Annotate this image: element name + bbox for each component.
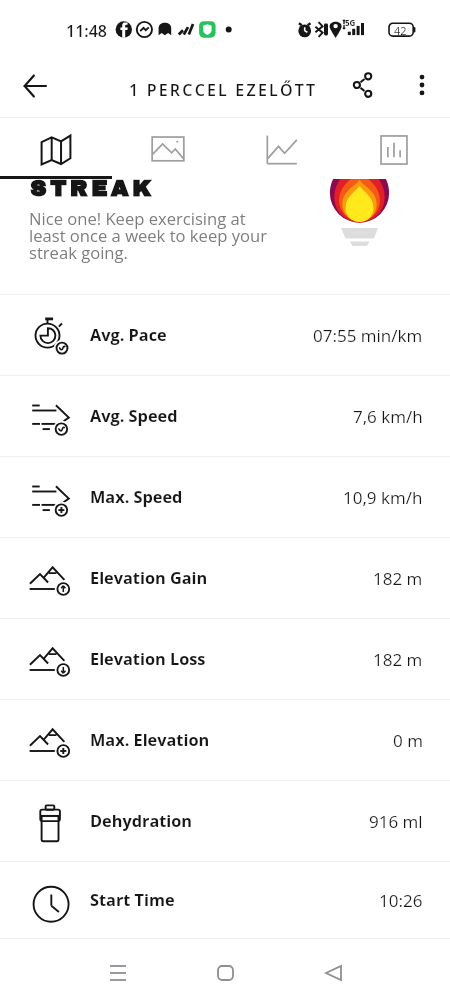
button[interactable]: Start Time bbox=[0, 862, 450, 939]
staticText: Dehydration bbox=[90, 810, 193, 832]
staticText: Start Time bbox=[90, 889, 175, 911]
button[interactable]: Avg. Pace bbox=[0, 295, 450, 376]
staticText: Avg. Pace bbox=[90, 324, 167, 346]
staticText: 10,9 km/h bbox=[343, 486, 423, 509]
button[interactable]: Elevation Gain bbox=[0, 538, 450, 619]
button[interactable]: Graph bbox=[224, 118, 337, 179]
staticText: Elevation Gain bbox=[90, 567, 208, 589]
button[interactable]: Max. Speed bbox=[0, 457, 450, 538]
button[interactable]: Map bbox=[0, 118, 112, 179]
staticText: 5G bbox=[345, 17, 356, 28]
staticText: 0 m bbox=[393, 729, 423, 752]
button[interactable]: Share bbox=[340, 62, 386, 108]
button[interactable]: Max. Elevation bbox=[0, 700, 450, 781]
button[interactable]: Dehydration bbox=[0, 781, 450, 862]
staticText: 11:48 bbox=[66, 20, 107, 42]
staticText: STREAK bbox=[30, 179, 155, 201]
staticText: Max. Elevation bbox=[90, 729, 210, 751]
button[interactable]: Stats bbox=[337, 118, 450, 179]
staticText: 916 ml bbox=[369, 810, 423, 833]
staticText: Avg. Speed bbox=[90, 405, 178, 427]
staticText: Max. Speed bbox=[90, 486, 183, 508]
staticText: Nice one! Keep exercising at least once … bbox=[29, 207, 267, 263]
button[interactable]: More options bbox=[399, 62, 445, 108]
staticText: Elevation Loss bbox=[90, 648, 206, 670]
staticText: 182 m bbox=[373, 648, 423, 671]
button[interactable]: Home bbox=[201, 949, 249, 997]
button[interactable]: Photos bbox=[112, 118, 224, 179]
button[interactable]: Elevation Loss bbox=[0, 619, 450, 700]
button[interactable]: Back bbox=[11, 62, 58, 109]
staticText: 10:26 bbox=[379, 889, 423, 912]
staticText: 07:55 min/km bbox=[313, 324, 423, 347]
staticText: 1 PERCCEL EZELŐTT bbox=[129, 79, 318, 101]
staticText: 42 bbox=[394, 23, 407, 38]
button[interactable]: Recents bbox=[94, 949, 142, 997]
button[interactable]: Avg. Speed bbox=[0, 376, 450, 457]
staticText: 182 m bbox=[373, 567, 423, 590]
staticText: 7,6 km/h bbox=[353, 405, 423, 428]
button[interactable]: Back bbox=[309, 949, 357, 997]
